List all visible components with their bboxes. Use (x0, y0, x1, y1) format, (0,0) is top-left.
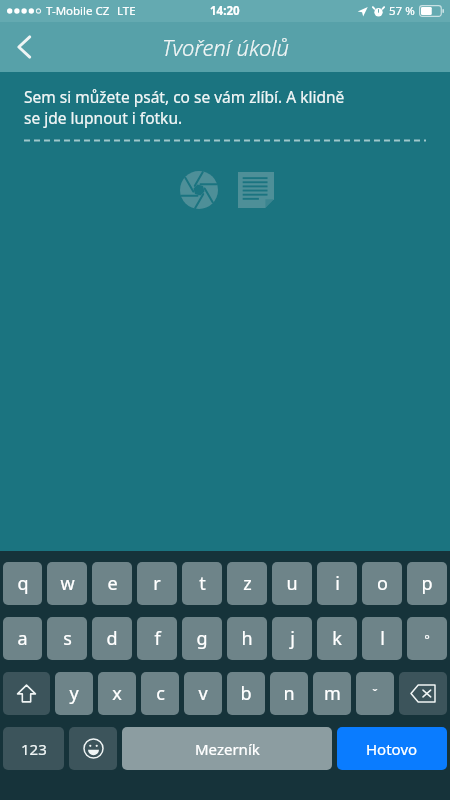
staticText: w (60, 571, 75, 596)
button[interactable]: Add photo (176, 167, 222, 213)
staticText: k (332, 626, 342, 651)
button[interactable]: c (141, 672, 179, 715)
button[interactable]: o (362, 562, 402, 605)
staticText: t (199, 571, 206, 596)
button[interactable]: y (55, 672, 93, 715)
button[interactable]: t (182, 562, 222, 605)
button[interactable]: d (92, 617, 132, 660)
staticText: s (63, 626, 72, 651)
staticText: c (156, 681, 165, 706)
staticText: y (69, 681, 79, 706)
staticText: j (290, 626, 295, 651)
staticText: x (112, 681, 122, 706)
button[interactable]: ° (407, 617, 447, 660)
button[interactable]: ˇ (356, 672, 394, 715)
button[interactable]: s (47, 617, 87, 660)
staticText: g (196, 626, 208, 651)
staticText: e (107, 571, 118, 596)
staticText: b (240, 681, 252, 706)
staticText: 123 (21, 739, 47, 759)
button[interactable]: m (313, 672, 351, 715)
staticText: u (286, 571, 298, 596)
staticText: d (106, 626, 118, 651)
staticText: Hotovo (366, 739, 418, 759)
staticText: r (153, 571, 161, 596)
button[interactable]: h (227, 617, 267, 660)
staticText: h (241, 626, 253, 651)
staticText: q (17, 571, 29, 596)
staticText: i (335, 571, 340, 596)
button[interactable]: f (137, 617, 177, 660)
button[interactable]: 123 (3, 727, 64, 770)
staticText: Mezerník (195, 739, 260, 759)
staticText: p (421, 571, 433, 596)
staticText: o (377, 571, 388, 596)
staticText: 14:20 (210, 3, 240, 19)
button[interactable]: l (362, 617, 402, 660)
button[interactable]: v (184, 672, 222, 715)
staticText: LTE (117, 3, 136, 19)
staticText: ° (424, 630, 430, 648)
button[interactable]: z (227, 562, 267, 605)
staticText: 57 % (389, 3, 415, 19)
staticText: Sem si můžete psát, co se vám zlíbí. A k… (24, 86, 345, 129)
button[interactable]: Mezerník (122, 727, 332, 770)
button[interactable]: q (3, 562, 42, 605)
staticText: v (198, 681, 208, 706)
staticText: a (17, 626, 28, 651)
button[interactable]: Add note (233, 167, 279, 213)
button[interactable]: Back (0, 23, 48, 71)
button[interactable]: b (227, 672, 265, 715)
staticText: n (283, 681, 295, 706)
button[interactable]: g (182, 617, 222, 660)
button[interactable]: e (92, 562, 132, 605)
button[interactable]: Hotovo (337, 727, 447, 770)
staticText: z (243, 571, 252, 596)
button[interactable]: Shift (3, 672, 50, 715)
button[interactable]: k (317, 617, 357, 660)
button[interactable]: x (98, 672, 136, 715)
staticText: T-Mobile CZ (46, 3, 110, 19)
button[interactable]: Backspace (399, 672, 447, 715)
button[interactable]: w (47, 562, 87, 605)
button[interactable]: Emoji (69, 727, 117, 770)
button[interactable]: p (407, 562, 447, 605)
button[interactable]: r (137, 562, 177, 605)
staticText: l (380, 626, 385, 651)
staticText: f (154, 626, 161, 651)
button[interactable]: u (272, 562, 312, 605)
button[interactable]: a (3, 617, 42, 660)
button[interactable]: i (317, 562, 357, 605)
staticText: ˇ (372, 685, 378, 703)
staticText: m (324, 681, 341, 706)
button[interactable]: n (270, 672, 308, 715)
button[interactable]: j (272, 617, 312, 660)
staticText: Tvoření úkolů (162, 32, 289, 62)
